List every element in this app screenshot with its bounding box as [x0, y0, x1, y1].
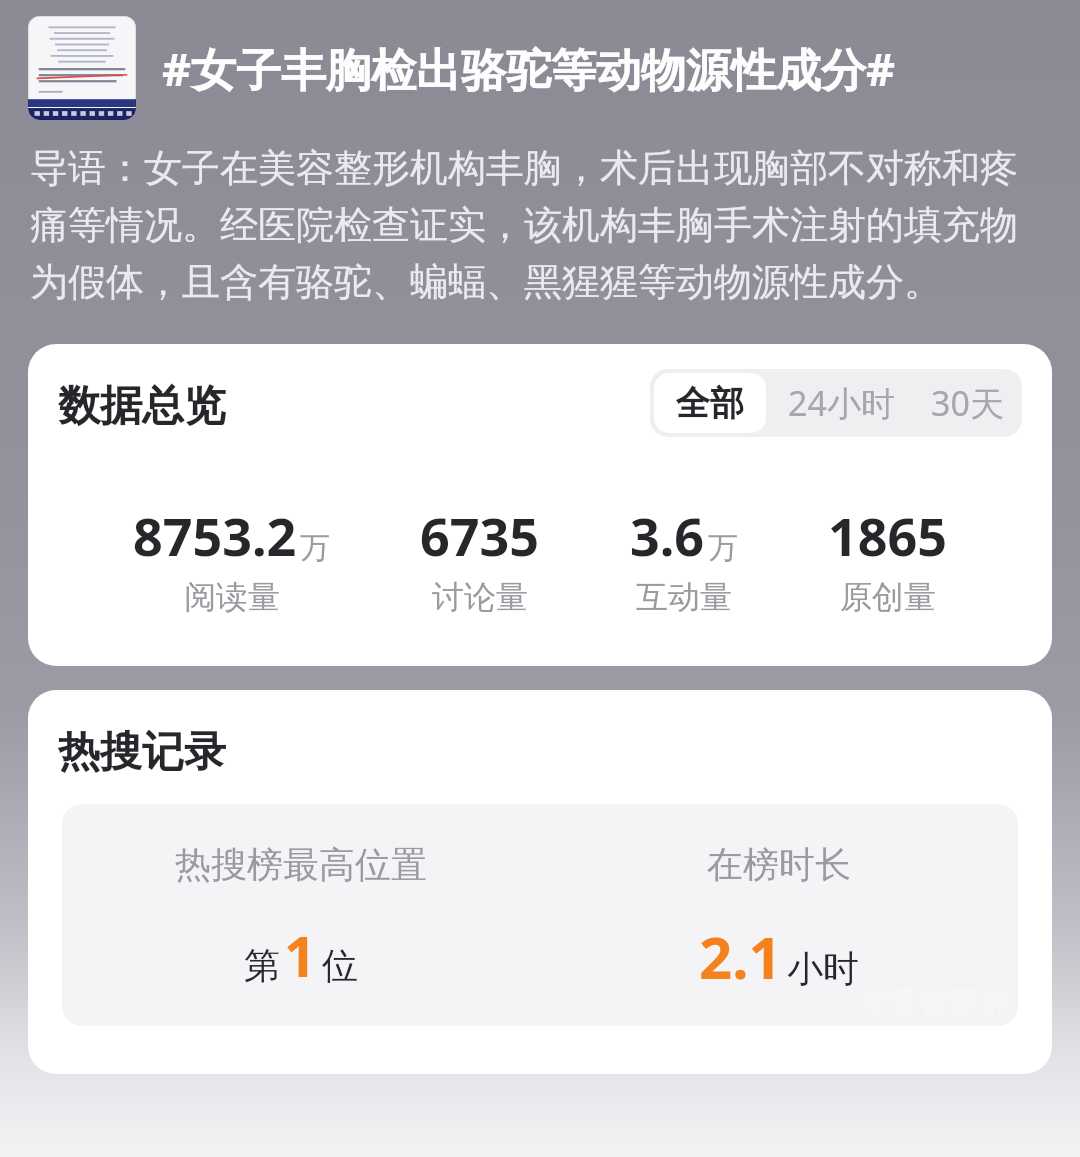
staticText: 2.1: [699, 917, 782, 996]
staticText: 全部: [676, 382, 744, 424]
staticText: 导语：女子在美容整形机构丰胸，术后出现胸部不对称和疼痛等情况。经医院检查证实，该…: [30, 144, 1026, 306]
staticText: 24小时: [788, 380, 895, 426]
button[interactable]: 24小时: [770, 371, 913, 435]
staticText: 互动量: [636, 577, 732, 617]
staticText: 万: [300, 529, 330, 567]
staticText: 在榜时长: [707, 842, 851, 887]
staticText: 1865: [828, 500, 947, 571]
staticText: 阅读量: [184, 577, 280, 617]
staticText: 1: [284, 917, 317, 993]
staticText: 位: [322, 943, 358, 988]
staticText: 万: [708, 529, 738, 567]
staticText: 8753.2: [133, 500, 297, 571]
staticText: 热搜榜最高位置: [175, 842, 427, 887]
button[interactable]: 话题配图: [28, 16, 136, 120]
staticText: 小时: [787, 946, 859, 991]
staticText: 3.6: [630, 500, 705, 571]
staticText: 原创量: [840, 577, 936, 617]
staticText: 热搜记录: [58, 726, 226, 779]
staticText: 第: [244, 943, 280, 988]
staticText: 30天: [931, 380, 1004, 426]
button[interactable]: 话题配图: [28, 16, 1056, 120]
button[interactable]: 30天: [913, 371, 1022, 435]
button[interactable]: 全部: [654, 373, 766, 433]
staticText: 数据总览: [58, 380, 226, 433]
staticText: 6735: [420, 500, 539, 571]
staticText: #女子丰胸检出骆驼等动物源性成分#: [162, 38, 896, 99]
staticText: 讨论量: [432, 577, 528, 617]
